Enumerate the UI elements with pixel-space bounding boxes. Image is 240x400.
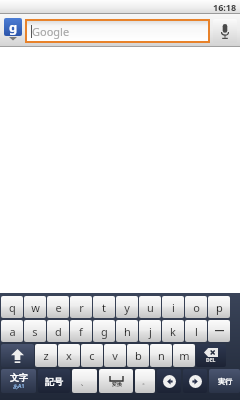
button[interactable]: 実行 xyxy=(209,369,240,393)
button[interactable]: e xyxy=(47,296,69,318)
staticText: ー xyxy=(214,324,225,338)
button[interactable]: t xyxy=(93,296,115,318)
button[interactable]: l xyxy=(185,320,207,342)
button[interactable]: x xyxy=(58,344,80,367)
staticText: q xyxy=(9,300,16,315)
button[interactable]: s xyxy=(24,320,46,342)
button[interactable]: v xyxy=(104,344,126,367)
staticText: p xyxy=(216,300,223,315)
button[interactable]: 。 xyxy=(135,369,155,393)
staticText: w xyxy=(31,300,40,315)
staticText: h xyxy=(124,324,131,339)
staticText: b xyxy=(135,348,142,363)
staticText: あA1 xyxy=(13,383,25,390)
staticText: n xyxy=(158,348,165,363)
staticText: 文字 xyxy=(10,372,28,383)
button[interactable]: Delete xyxy=(196,344,226,367)
button[interactable]: g xyxy=(93,320,115,342)
button[interactable]: m xyxy=(173,344,195,367)
staticText: u xyxy=(147,300,154,315)
staticText: i xyxy=(172,300,175,315)
button[interactable]: k xyxy=(162,320,184,342)
button[interactable]: i xyxy=(162,296,184,318)
button[interactable]: o xyxy=(185,296,207,318)
staticText: v xyxy=(112,348,118,363)
button[interactable]: Google search provider xyxy=(3,18,23,44)
button[interactable]: c xyxy=(81,344,103,367)
button[interactable]: b xyxy=(127,344,149,367)
staticText: x xyxy=(66,348,72,363)
staticText: 16:18 xyxy=(213,1,237,13)
staticText: t xyxy=(102,300,106,315)
button[interactable]: Voice search xyxy=(213,19,237,43)
button[interactable]: r xyxy=(70,296,92,318)
staticText: g xyxy=(9,18,18,36)
staticText: g xyxy=(101,324,108,339)
staticText: DEL xyxy=(206,357,216,364)
button[interactable]: y xyxy=(116,296,138,318)
staticText: 変換 xyxy=(112,381,122,387)
button[interactable]: Move right xyxy=(183,369,207,393)
staticText: m xyxy=(179,348,190,363)
button[interactable]: Input mode xyxy=(1,369,36,393)
staticText: 、 xyxy=(80,376,89,387)
button[interactable]: h xyxy=(116,320,138,342)
staticText: y xyxy=(124,300,130,315)
staticText: 。 xyxy=(142,377,149,386)
staticText: k xyxy=(170,324,176,339)
button[interactable]: p xyxy=(208,296,230,318)
button[interactable]: j xyxy=(139,320,161,342)
button[interactable]: ー xyxy=(208,320,230,342)
button[interactable]: Move left xyxy=(157,369,181,393)
button[interactable]: n xyxy=(150,344,172,367)
staticText: e xyxy=(55,300,62,315)
staticText: f xyxy=(79,324,83,339)
button[interactable]: Google xyxy=(27,21,208,41)
staticText: 実行 xyxy=(218,377,232,386)
button[interactable]: f xyxy=(70,320,92,342)
button[interactable]: 記号 xyxy=(38,369,70,393)
staticText: c xyxy=(89,348,95,363)
staticText: l xyxy=(195,324,198,339)
staticText: Google xyxy=(32,24,70,39)
staticText: d xyxy=(55,324,62,339)
button[interactable]: 、 xyxy=(72,369,97,393)
staticText: s xyxy=(32,324,38,339)
staticText: r xyxy=(79,300,84,315)
button[interactable]: Shift xyxy=(1,344,34,367)
staticText: 記号 xyxy=(45,376,63,387)
button[interactable]: Space convert xyxy=(99,369,133,393)
staticText: a xyxy=(9,324,16,339)
button[interactable]: w xyxy=(24,296,46,318)
button[interactable]: q xyxy=(1,296,23,318)
button[interactable]: a xyxy=(1,320,23,342)
staticText: z xyxy=(43,348,49,363)
staticText: o xyxy=(193,300,200,315)
button[interactable]: z xyxy=(35,344,57,367)
button[interactable]: u xyxy=(139,296,161,318)
staticText: j xyxy=(149,324,152,339)
button[interactable]: d xyxy=(47,320,69,342)
